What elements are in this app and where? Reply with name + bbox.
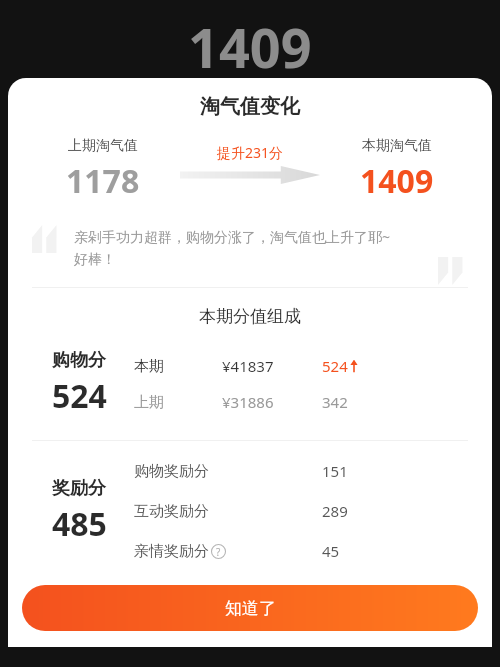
staticText: ¥31886 bbox=[222, 392, 322, 412]
staticText: 亲剁手功力超群，购物分涨了，淘气值也上升了耶~ 好棒！ bbox=[74, 227, 391, 269]
staticText: 互动奖励分 bbox=[134, 502, 209, 521]
staticText: 淘气值变化 bbox=[8, 94, 492, 119]
staticText: 亲情奖励分 bbox=[134, 542, 209, 561]
staticText: 本期淘气值 bbox=[362, 137, 432, 155]
staticText: 购物奖励分 bbox=[134, 462, 209, 481]
staticText: 购物分 bbox=[52, 349, 106, 372]
staticText: ? bbox=[216, 545, 221, 559]
staticText: ¥41837 bbox=[222, 356, 322, 376]
staticText: 1409 bbox=[360, 159, 434, 203]
staticText: 485 bbox=[52, 502, 107, 546]
staticText: 1178 bbox=[66, 159, 140, 203]
button[interactable]: 帮助说明 bbox=[211, 544, 226, 559]
staticText: 上期淘气值 bbox=[68, 137, 138, 155]
staticText: 289 bbox=[322, 501, 348, 521]
staticText: 本期分值组成 bbox=[8, 306, 492, 327]
staticText: 524 bbox=[322, 356, 348, 376]
staticText: 奖励分 bbox=[52, 477, 106, 500]
staticText: 342 bbox=[322, 392, 348, 412]
staticText: 本期 bbox=[134, 357, 222, 376]
staticText: 524 bbox=[52, 374, 107, 418]
button[interactable]: 知道了 bbox=[22, 585, 478, 631]
staticText: 151 bbox=[322, 461, 348, 481]
staticText: 知道了 bbox=[225, 598, 276, 619]
staticText: 1409 bbox=[188, 10, 312, 84]
staticText: 提升231分 bbox=[217, 143, 284, 162]
staticText: 上期 bbox=[134, 393, 222, 412]
staticText: 45 bbox=[322, 541, 340, 561]
